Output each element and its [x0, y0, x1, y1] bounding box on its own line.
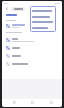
- button[interactable]: [32, 25, 54, 30]
- button[interactable]: [32, 8, 54, 13]
- button[interactable]: [32, 19, 54, 24]
- button[interactable]: [11, 7, 25, 11]
- button[interactable]: Home: [7, 99, 21, 106]
- button[interactable]: [6, 60, 59, 68]
- button[interactable]: [6, 23, 59, 29]
- button[interactable]: Profile: [44, 99, 58, 106]
- button[interactable]: Search: [25, 99, 39, 106]
- button[interactable]: [6, 44, 59, 52]
- button[interactable]: [6, 52, 59, 60]
- button[interactable]: [6, 14, 17, 16]
- button[interactable]: [6, 36, 59, 44]
- button[interactable]: Back: [5, 7, 9, 11]
- button[interactable]: [32, 14, 54, 19]
